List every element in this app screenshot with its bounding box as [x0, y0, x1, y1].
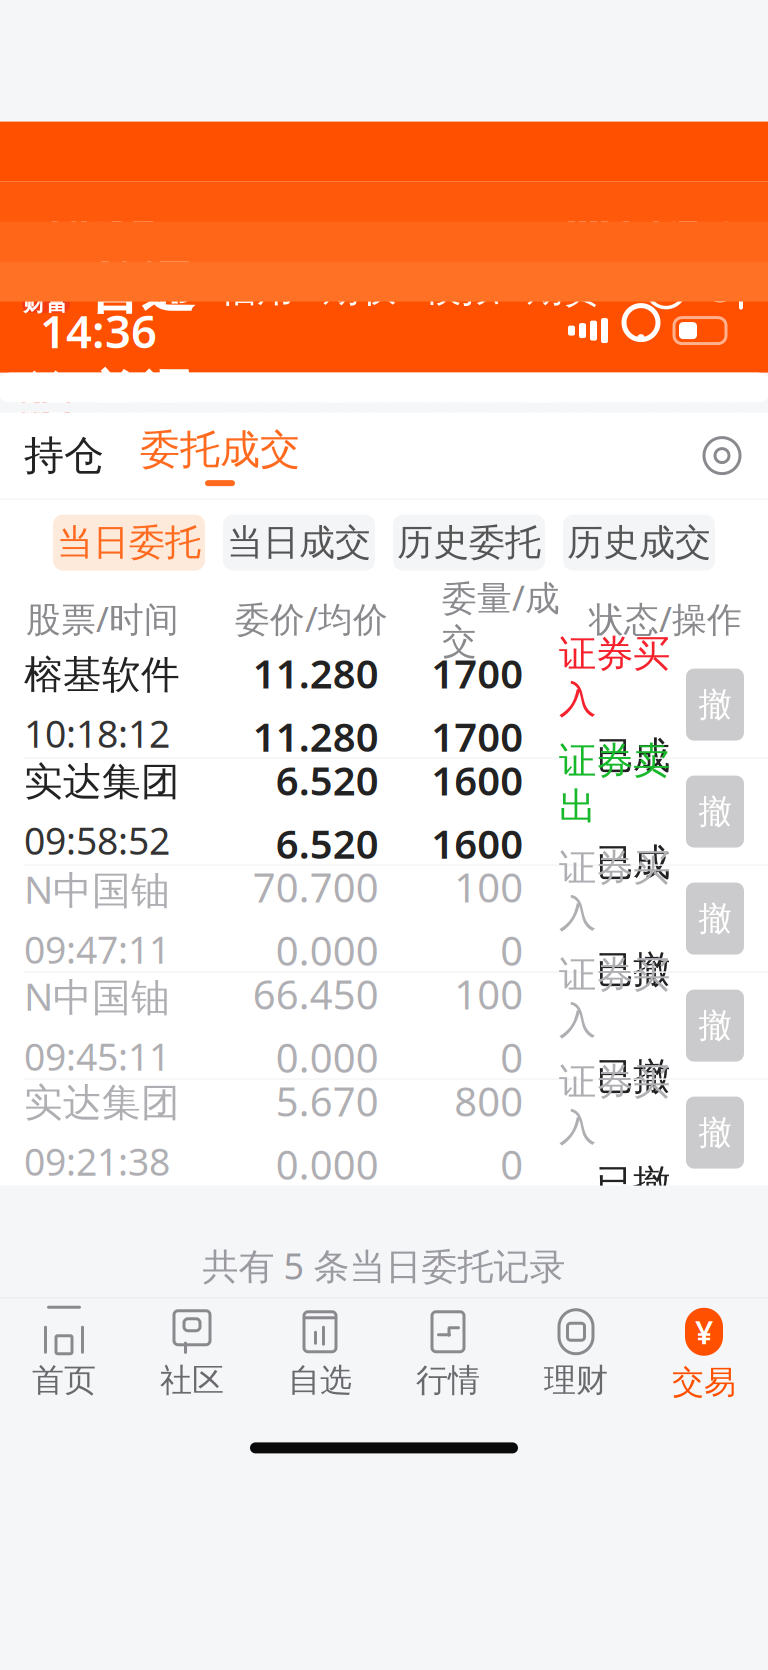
- button[interactable]: 首页: [4, 1306, 124, 1402]
- staticText: 证券买入: [559, 845, 670, 936]
- staticText: 1700: [431, 710, 523, 763]
- button[interactable]: 搜索: [702, 376, 746, 420]
- button[interactable]: 东方财富: [22, 265, 70, 313]
- staticText: 东方: [23, 260, 69, 288]
- staticText: 当日委托: [57, 520, 201, 565]
- button[interactable]: 持仓: [24, 424, 104, 488]
- staticText: 撤: [698, 1005, 731, 1046]
- staticText: 09:47:11: [24, 925, 170, 974]
- staticText: 0: [500, 1031, 523, 1084]
- staticText: 11.280: [253, 710, 379, 763]
- staticText: 0.000: [276, 1031, 379, 1084]
- staticText: 信用: [220, 375, 294, 421]
- staticText: 证券买入: [559, 1059, 670, 1150]
- staticText: 历史成交: [567, 520, 711, 565]
- button[interactable]: 期货: [526, 266, 600, 312]
- staticText: 委价/均价: [235, 596, 388, 642]
- button[interactable]: 期权: [322, 266, 396, 312]
- button[interactable]: 委托成交: [140, 421, 300, 491]
- staticText: 09:58:52: [24, 816, 170, 865]
- button[interactable]: ¥: [644, 1306, 764, 1402]
- button[interactable]: 东方财富: [22, 374, 70, 422]
- button[interactable]: 自选: [260, 1306, 380, 1402]
- staticText: 已成: [596, 732, 670, 778]
- staticText: 证券买入: [559, 952, 670, 1043]
- button[interactable]: 实达集团: [0, 759, 768, 865]
- button[interactable]: 社区: [132, 1306, 252, 1402]
- button[interactable]: N中国铀: [0, 973, 768, 1079]
- button[interactable]: 搜索: [702, 267, 746, 311]
- staticText: 800: [454, 1074, 523, 1128]
- staticText: 期货: [526, 375, 600, 421]
- button[interactable]: N中国铀: [0, 866, 768, 972]
- button[interactable]: 模拟: [424, 375, 498, 421]
- button[interactable]: 模拟: [424, 266, 498, 312]
- staticText: 6.520: [276, 817, 379, 870]
- staticText: 委量/成交: [442, 574, 560, 663]
- button[interactable]: 历史委托: [393, 515, 545, 571]
- staticText: 100: [454, 860, 523, 914]
- staticText: 0: [500, 1138, 523, 1191]
- staticText: 历史委托: [397, 520, 541, 565]
- staticText: 撤: [698, 791, 731, 832]
- staticText: 证券卖出: [559, 738, 670, 829]
- staticText: 6.520: [276, 753, 379, 807]
- button[interactable]: 当日成交: [223, 515, 375, 571]
- staticText: 1700: [431, 646, 523, 700]
- button[interactable]: 期货: [526, 375, 600, 421]
- button[interactable]: 当日委托: [53, 515, 205, 571]
- staticText: 期权: [322, 375, 396, 421]
- staticText: 0.000: [276, 1138, 379, 1191]
- button[interactable]: 设置: [700, 434, 744, 478]
- staticText: 撤: [698, 684, 731, 725]
- staticText: 财富: [23, 398, 69, 426]
- staticText: 当日成交: [227, 520, 371, 565]
- staticText: 14:36: [40, 300, 157, 361]
- staticText: 交易: [672, 1363, 736, 1402]
- staticText: 期权: [322, 266, 396, 312]
- staticText: 共有 5 条当日委托记录: [202, 1242, 565, 1289]
- staticText: 东方: [23, 369, 69, 397]
- staticText: 首页: [32, 1361, 96, 1400]
- staticText: 已成: [596, 839, 670, 885]
- staticText: 已撤: [596, 1160, 670, 1206]
- staticText: 财富: [23, 289, 69, 317]
- staticText: 状态/操作: [589, 596, 742, 642]
- staticText: 14:36: [40, 191, 157, 252]
- button[interactable]: 信用: [220, 266, 294, 312]
- staticText: 股票/时间: [26, 596, 179, 642]
- staticText: 0.000: [276, 924, 379, 977]
- staticText: ¥: [695, 1310, 713, 1353]
- staticText: 实达集团: [24, 758, 180, 806]
- button[interactable]: 期权: [322, 375, 396, 421]
- staticText: 模拟: [424, 266, 498, 312]
- staticText: 70.700: [253, 860, 379, 914]
- button[interactable]: 榕基软件: [0, 652, 768, 758]
- staticText: 撤: [698, 898, 731, 939]
- staticText: 1600: [431, 753, 523, 807]
- staticText: 0: [500, 924, 523, 977]
- staticText: 09:45:11: [24, 1032, 170, 1081]
- staticText: 5.670: [276, 1074, 379, 1128]
- staticText: 100: [454, 967, 523, 1021]
- staticText: 社区: [160, 1361, 224, 1400]
- button[interactable]: 刷新: [644, 267, 688, 311]
- staticText: 普通: [88, 256, 194, 321]
- button[interactable]: 刷新: [644, 376, 688, 420]
- staticText: 66.450: [253, 967, 379, 1021]
- staticText: 榕基软件: [24, 651, 180, 699]
- staticText: 模拟: [424, 375, 498, 421]
- button[interactable]: 行情: [388, 1306, 508, 1402]
- button[interactable]: 理财: [516, 1306, 636, 1402]
- button[interactable]: 实达集团: [0, 1080, 768, 1186]
- staticText: 期货: [526, 266, 600, 312]
- staticText: 已撤: [596, 946, 670, 992]
- staticText: 撤: [698, 1112, 731, 1153]
- staticText: 09:21:38: [24, 1137, 170, 1186]
- staticText: 普通: [88, 365, 194, 430]
- staticText: 持仓: [24, 431, 104, 480]
- staticText: N中国铀: [24, 863, 170, 914]
- button[interactable]: 信用: [220, 375, 294, 421]
- staticText: 证券买入: [559, 631, 670, 722]
- button[interactable]: 历史成交: [563, 515, 715, 571]
